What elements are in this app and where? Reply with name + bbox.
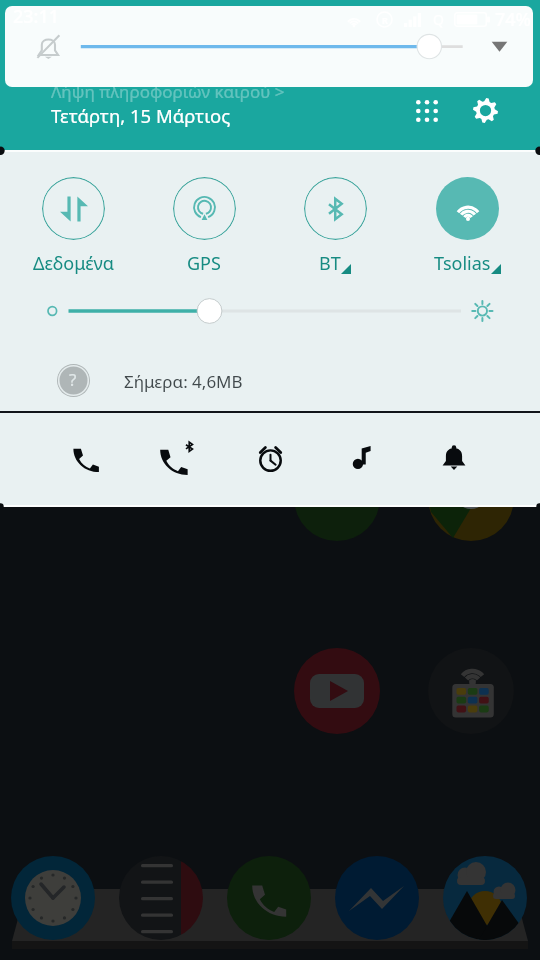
button[interactable]: Notifications — [408, 412, 500, 507]
button[interactable]: Expand volume — [475, 6, 523, 87]
staticText: Τετάρτη, 15 Μάρτιος — [51, 103, 231, 128]
staticText: Λήψη πληροφοριών καιρού > — [51, 80, 285, 103]
button[interactable]: Alarm — [224, 412, 316, 507]
staticText: ? — [69, 368, 77, 391]
button[interactable]: Data usage info — [51, 358, 95, 402]
staticText: 23:11 — [13, 4, 60, 29]
button[interactable]: GPS — [142, 171, 266, 276]
button[interactable]: All apps — [405, 89, 449, 133]
button[interactable]: Settings — [463, 88, 507, 132]
button[interactable]: Δεδομένα — [11, 171, 135, 276]
staticText: Tsolias — [434, 251, 491, 276]
button[interactable]: Music — [316, 412, 408, 507]
button[interactable]: Bluetooth call — [132, 412, 224, 507]
button[interactable]: Phone — [40, 412, 132, 507]
staticText: GPS — [187, 251, 221, 276]
staticText: BT — [319, 251, 341, 276]
staticText: Σήμερα: 4,6MB — [124, 370, 243, 393]
staticText: 74% — [495, 7, 531, 32]
button[interactable]: Tsolias — [405, 171, 529, 276]
button[interactable]: BT — [273, 171, 397, 276]
staticText: Δεδομένα — [33, 251, 114, 276]
